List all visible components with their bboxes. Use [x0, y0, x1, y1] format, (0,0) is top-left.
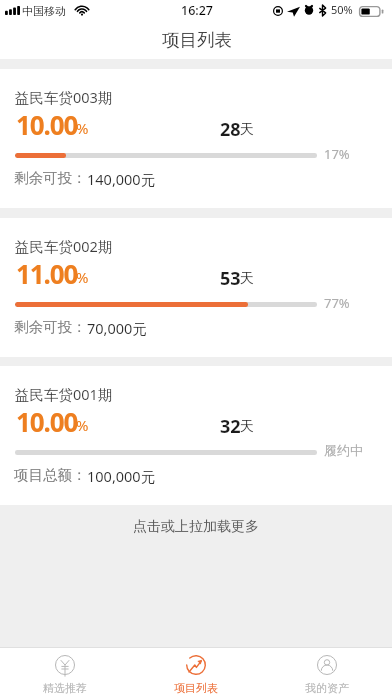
- staticText: 项目列表: [162, 29, 232, 51]
- staticText: 100,000元: [87, 466, 156, 486]
- staticText: 天: [240, 418, 254, 436]
- button[interactable]: 益民车贷001期: [0, 366, 392, 505]
- staticText: 天: [240, 121, 254, 139]
- staticText: 140,000元: [87, 169, 156, 189]
- button[interactable]: 益民车贷002期: [0, 218, 392, 357]
- staticText: 剩余可投：: [14, 169, 87, 187]
- staticText: 益民车贷001期: [15, 384, 113, 404]
- staticText: 77%: [324, 294, 350, 312]
- button[interactable]: 精选推荐: [0, 648, 130, 696]
- staticText: %: [76, 267, 89, 287]
- staticText: 我的资产: [305, 681, 349, 695]
- staticText: 中国移动: [22, 4, 66, 18]
- button[interactable]: 我的资产: [261, 648, 392, 696]
- staticText: 10.00: [16, 107, 78, 142]
- other: 我的资产: [317, 655, 337, 675]
- other: 项目列表: [186, 655, 206, 675]
- staticText: 70,000元: [87, 318, 147, 338]
- staticText: 16:27: [181, 2, 214, 19]
- button[interactable]: 益民车贷003期: [0, 69, 392, 208]
- staticText: %: [76, 415, 89, 435]
- staticText: 项目列表: [174, 681, 218, 695]
- other: 精选推荐: [55, 655, 75, 675]
- staticText: 32: [220, 414, 241, 439]
- staticText: 精选推荐: [43, 681, 87, 695]
- staticText: 点击或上拉加载更多: [133, 518, 259, 536]
- staticText: 项目总额：: [14, 466, 87, 484]
- staticText: 17%: [324, 145, 350, 163]
- button[interactable]: 点击或上拉加载更多: [0, 505, 392, 549]
- staticText: 50%: [331, 2, 353, 17]
- staticText: 11.00: [16, 256, 78, 291]
- staticText: 履约中: [324, 442, 363, 458]
- staticText: %: [76, 118, 89, 138]
- staticText: 天: [240, 270, 254, 288]
- staticText: 益民车贷003期: [15, 87, 113, 107]
- staticText: 53: [220, 266, 241, 291]
- button[interactable]: 项目列表: [130, 648, 261, 696]
- staticText: 剩余可投：: [14, 318, 87, 336]
- staticText: 28: [220, 117, 241, 142]
- staticText: 10.00: [16, 404, 78, 439]
- staticText: 益民车贷002期: [15, 236, 113, 256]
